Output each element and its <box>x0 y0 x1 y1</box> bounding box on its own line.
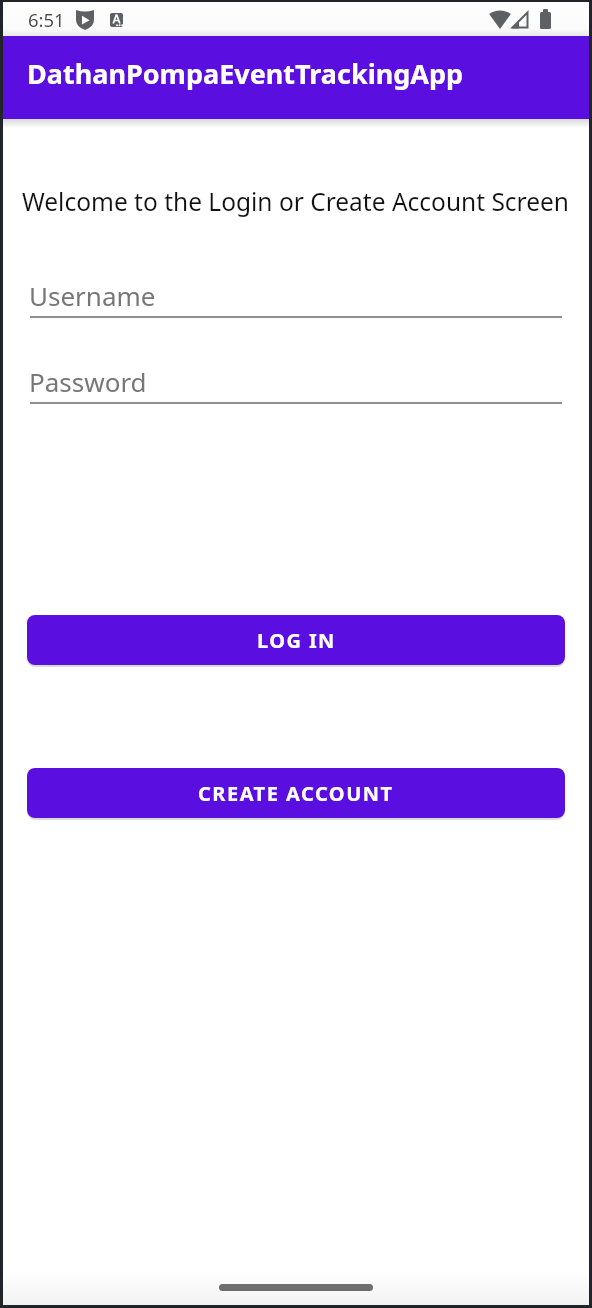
button[interactable]: Username <box>30 273 562 317</box>
button[interactable]: Password <box>30 359 562 403</box>
staticText: 6:51 <box>28 7 65 32</box>
staticText: DathanPompaEventTrackingApp <box>27 55 464 92</box>
button[interactable]: LOG IN <box>27 615 565 665</box>
staticText: Welcome to the Login or Create Account S… <box>22 185 570 218</box>
button[interactable]: CREATE ACCOUNT <box>27 768 565 818</box>
button[interactable] <box>219 1284 373 1291</box>
staticText: CREATE ACCOUNT <box>198 780 394 807</box>
staticText: Password <box>29 364 147 399</box>
staticText: Username <box>29 278 156 313</box>
staticText: LOG IN <box>257 627 336 654</box>
